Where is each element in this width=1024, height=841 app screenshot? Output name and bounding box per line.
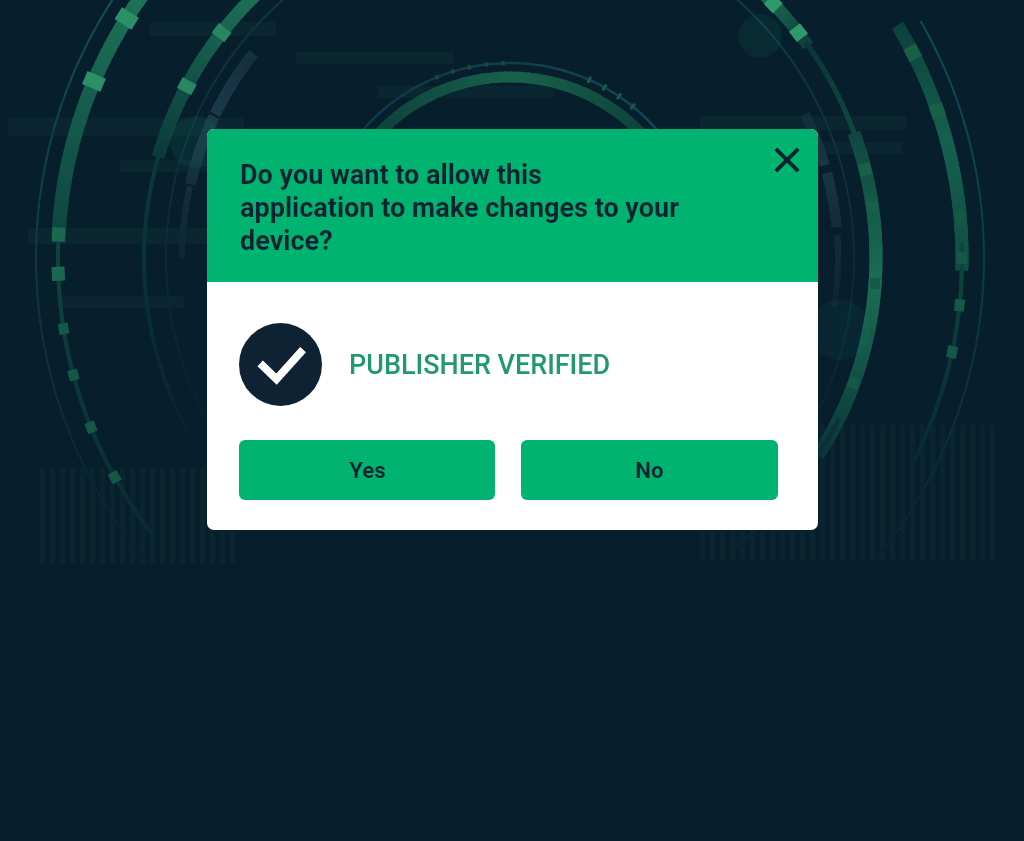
button[interactable]: Close — [761, 134, 813, 186]
staticText: Do you want to allow this application to… — [240, 159, 679, 256]
staticText: No — [635, 457, 664, 483]
staticText: PUBLISHER VERIFIED — [349, 349, 611, 381]
button[interactable]: No — [521, 440, 778, 500]
staticText: Yes — [349, 457, 386, 483]
button[interactable]: Yes — [239, 440, 495, 500]
